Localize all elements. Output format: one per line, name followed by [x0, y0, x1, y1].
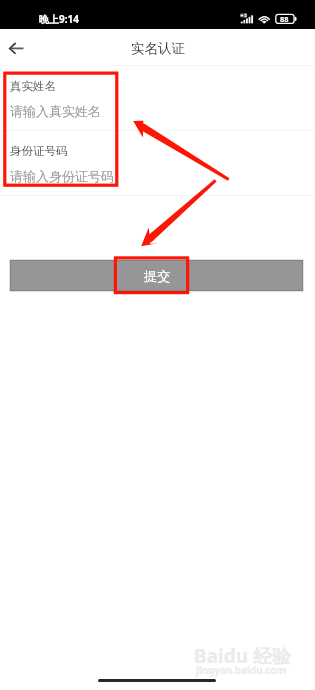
button[interactable]: 返回 — [0, 29, 34, 65]
staticText: 请输入真实姓名 — [10, 103, 101, 119]
staticText: 晚上9:14 — [39, 12, 79, 26]
button[interactable]: 身份证号码 — [0, 131, 315, 195]
button[interactable]: 真实姓名 — [0, 66, 315, 130]
staticText: 真实姓名 — [10, 79, 56, 93]
staticText: jingyan.baidu.com — [196, 664, 287, 677]
staticText: 提交 — [144, 268, 171, 285]
button[interactable]: 提交 — [10, 260, 303, 291]
staticText: 请输入身份证号码 — [10, 168, 114, 184]
staticText: 身份证号码 — [10, 144, 68, 158]
staticText: 实名认证 — [131, 40, 185, 57]
staticText: 88 — [280, 14, 289, 24]
staticText: Baidu 经验 — [194, 643, 291, 669]
